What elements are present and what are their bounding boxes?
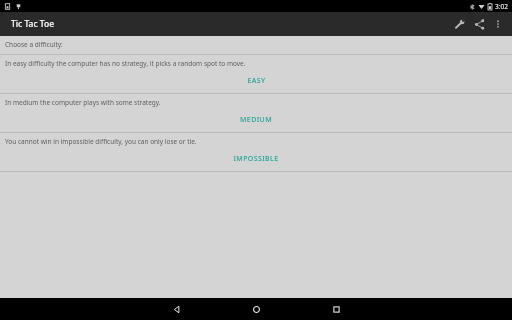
staticText: You cannot win in impossible difficulty,…: [5, 137, 197, 146]
button[interactable]: EASY: [0, 72, 512, 89]
staticText: Tic Tac Toe: [11, 18, 55, 30]
button[interactable]: Recent apps: [314, 298, 358, 320]
button[interactable]: Back: [154, 298, 198, 320]
button[interactable]: Home: [234, 298, 278, 320]
button[interactable]: IMPOSSIBLE: [0, 150, 512, 167]
staticText: In easy difficulty the computer has no s…: [5, 59, 246, 68]
staticText: IMPOSSIBLE: [233, 154, 279, 164]
button[interactable]: Tools: [449, 14, 469, 34]
staticText: EASY: [247, 76, 266, 86]
button[interactable]: More options: [489, 15, 507, 33]
staticText: Choose a difficulty:: [5, 40, 63, 49]
staticText: In medium the computer plays with some s…: [5, 98, 161, 107]
button[interactable]: Share: [469, 14, 489, 34]
button[interactable]: MEDIUM: [0, 111, 512, 128]
staticText: 3:02: [495, 2, 508, 11]
staticText: MEDIUM: [240, 115, 272, 125]
